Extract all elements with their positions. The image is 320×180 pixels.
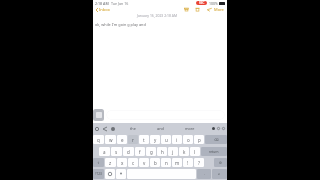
button[interactable]: l xyxy=(190,147,200,156)
staticText: return xyxy=(209,150,219,154)
button[interactable]: Symbols xyxy=(93,169,104,179)
staticText: l xyxy=(194,149,196,155)
staticText: h xyxy=(161,149,164,155)
button[interactable]: and xyxy=(157,126,164,131)
button[interactable]: v xyxy=(139,158,149,167)
staticText: REC xyxy=(199,1,205,5)
staticText: ⌫ xyxy=(214,138,219,142)
button[interactable]: m xyxy=(172,158,182,167)
button[interactable]: k xyxy=(179,147,189,156)
button[interactable]: Archive xyxy=(183,6,189,12)
button[interactable]: Reply xyxy=(206,6,212,12)
button[interactable]: n xyxy=(161,158,171,167)
staticText: n xyxy=(165,160,168,166)
button[interactable]: Settings xyxy=(217,127,220,130)
button[interactable]: q xyxy=(93,135,104,144)
staticText: z xyxy=(109,160,112,166)
staticText: b xyxy=(154,160,157,166)
staticText: e xyxy=(121,137,124,143)
button[interactable]: Stickers xyxy=(111,127,115,131)
staticText: ↵ xyxy=(218,172,221,176)
staticText: a xyxy=(103,149,106,155)
button[interactable]: the xyxy=(130,126,136,131)
button[interactable]: More options xyxy=(222,127,225,130)
button[interactable]: f xyxy=(135,147,145,156)
staticText: x xyxy=(121,160,124,166)
staticText: ?123 xyxy=(95,172,102,176)
button[interactable]: Sticker pack xyxy=(212,127,215,130)
staticText: u xyxy=(165,137,168,143)
staticText: y xyxy=(154,137,157,143)
button[interactable]: Google xyxy=(95,127,99,131)
button[interactable]: u xyxy=(161,135,171,144)
staticText: January 16, 2023 2:18 AM xyxy=(93,13,221,18)
staticText: w xyxy=(109,137,113,143)
staticText: c xyxy=(132,160,135,166)
staticText: Inbox xyxy=(99,7,110,12)
staticText: m xyxy=(175,160,180,166)
button[interactable]: i xyxy=(172,135,182,144)
staticText: i xyxy=(176,137,178,143)
button[interactable]: Delete xyxy=(194,6,200,12)
button[interactable]: w xyxy=(105,135,116,144)
staticText: . xyxy=(204,172,205,176)
button[interactable]: x xyxy=(117,158,127,167)
button[interactable]: a xyxy=(99,147,110,156)
button[interactable]: h xyxy=(157,147,167,156)
staticText: 100% xyxy=(209,1,218,6)
staticText: s xyxy=(115,149,118,155)
button[interactable]: y xyxy=(150,135,160,144)
staticText: k xyxy=(183,149,186,155)
staticText: ⚙ xyxy=(219,161,222,165)
button[interactable]: Expand toolbar xyxy=(103,127,107,131)
staticText: ? xyxy=(198,160,200,166)
button[interactable]: e xyxy=(117,135,127,144)
button[interactable]: Enter xyxy=(212,169,227,179)
button[interactable]: Voice input xyxy=(116,169,126,179)
button[interactable]: g xyxy=(146,147,156,156)
button[interactable]: ? xyxy=(194,158,204,167)
staticText: ok, while I'm goin g play and xyxy=(95,22,146,27)
staticText: ⇧ xyxy=(97,161,100,165)
staticText: ! xyxy=(187,160,189,166)
button[interactable]: Emoji search xyxy=(214,158,227,167)
button[interactable]: more xyxy=(185,126,195,131)
button[interactable]: Inbox xyxy=(95,7,111,12)
staticText: t xyxy=(143,137,145,143)
button[interactable]: z xyxy=(105,158,116,167)
button[interactable]: t xyxy=(139,135,149,144)
staticText: v xyxy=(143,160,146,166)
button[interactable]: j xyxy=(168,147,178,156)
staticText: o xyxy=(187,137,190,143)
button[interactable]: r xyxy=(128,135,138,144)
staticText: f xyxy=(139,149,141,155)
button[interactable]: More xyxy=(213,7,225,12)
button[interactable]: Emoji xyxy=(105,169,115,179)
button[interactable]: o xyxy=(183,135,193,144)
button[interactable]: Shift xyxy=(93,158,104,167)
button[interactable]: d xyxy=(123,147,134,156)
staticText: Tue Jan 16 xyxy=(111,1,129,6)
staticText: q xyxy=(97,137,100,143)
button[interactable]: s xyxy=(111,147,122,156)
staticText: r xyxy=(132,137,134,143)
button[interactable]: Backspace xyxy=(205,135,227,144)
button[interactable]: Return xyxy=(201,147,227,156)
button[interactable]: Attachment xyxy=(93,109,104,121)
button[interactable]: b xyxy=(150,158,160,167)
button[interactable]: c xyxy=(128,158,138,167)
staticText: j xyxy=(172,149,174,155)
button[interactable]: ! xyxy=(183,158,193,167)
button[interactable]: p xyxy=(194,135,204,144)
staticText: g xyxy=(150,149,153,155)
staticText: d xyxy=(127,149,130,155)
staticText: 2:18 AM xyxy=(95,1,109,6)
staticText: p xyxy=(198,137,201,143)
